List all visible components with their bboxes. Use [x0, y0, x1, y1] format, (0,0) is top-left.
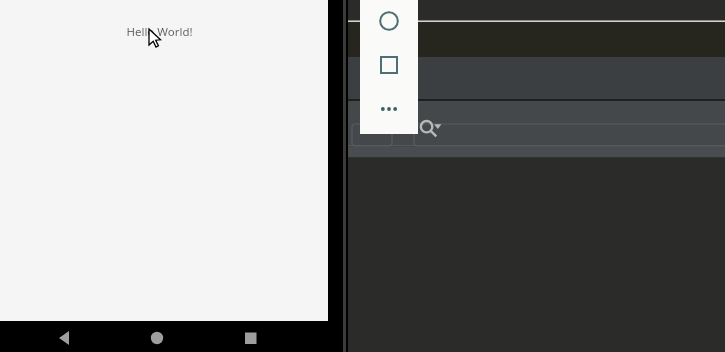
staticText: Hello World!	[126, 24, 193, 40]
button[interactable]: Hello World!	[124, 23, 194, 41]
button[interactable]: Search	[418, 117, 444, 139]
button[interactable]: Circle shape	[378, 10, 400, 32]
button[interactable]: Square shape	[378, 54, 400, 76]
button[interactable]: More options	[378, 98, 400, 120]
